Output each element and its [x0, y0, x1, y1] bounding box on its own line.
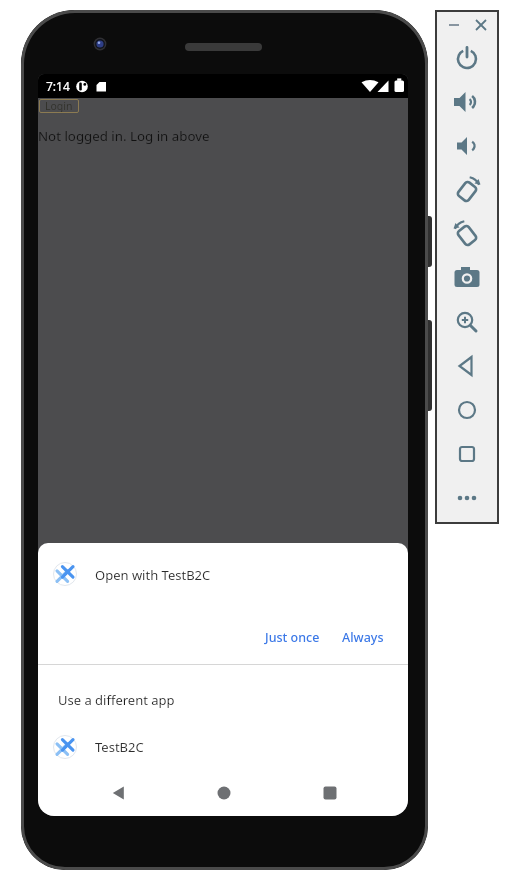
button[interactable] — [447, 346, 487, 386]
button[interactable] — [447, 82, 487, 122]
button[interactable] — [447, 434, 487, 474]
button[interactable] — [447, 170, 487, 210]
staticText: Always — [342, 629, 384, 646]
button[interactable] — [444, 15, 464, 35]
button[interactable] — [471, 15, 491, 35]
button[interactable] — [447, 38, 487, 78]
staticText: Login — [45, 99, 73, 113]
button[interactable] — [447, 478, 487, 518]
button[interactable] — [447, 126, 487, 166]
staticText: Use a different app — [58, 691, 175, 709]
button[interactable]: Login — [39, 99, 79, 113]
button[interactable]: TestB2C — [38, 731, 408, 763]
button[interactable] — [447, 214, 487, 254]
staticText: TestB2C — [95, 738, 144, 756]
button[interactable]: Always — [342, 629, 384, 646]
staticText: Open with TestB2C — [95, 566, 211, 584]
staticText: 7:14 — [46, 78, 70, 94]
staticText: Just once — [265, 629, 320, 646]
button[interactable] — [447, 302, 487, 342]
button[interactable] — [206, 775, 242, 811]
button[interactable] — [447, 258, 487, 298]
button[interactable] — [312, 775, 348, 811]
button[interactable] — [100, 775, 136, 811]
staticText: Not logged in. Log in above — [38, 127, 210, 145]
button[interactable] — [447, 390, 487, 430]
button[interactable]: Just once — [265, 629, 320, 646]
